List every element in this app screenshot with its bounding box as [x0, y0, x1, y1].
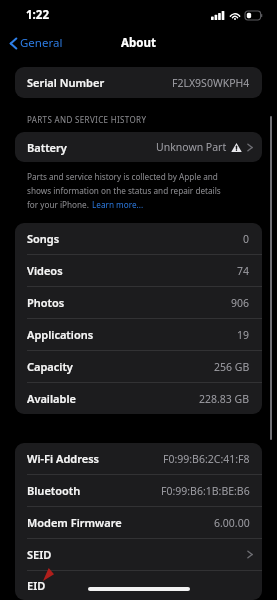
- staticText: Modem Firmware: [27, 515, 122, 530]
- button[interactable]: Photos: [15, 287, 262, 319]
- staticText: F2LX9S0WKPH4: [172, 76, 250, 90]
- other: Warning: [231, 142, 242, 153]
- staticText: for your iPhone.: [27, 199, 92, 210]
- staticText: SEID: [27, 547, 52, 562]
- other: Open details: [247, 549, 253, 560]
- button[interactable]: General: [0, 32, 71, 54]
- staticText: General: [20, 35, 63, 51]
- staticText: Bluetooth: [27, 483, 81, 498]
- staticText: Available: [27, 391, 76, 406]
- button[interactable]: Learn more...: [92, 199, 144, 210]
- button[interactable]: Bluetooth: [15, 475, 262, 507]
- button[interactable]: Videos: [15, 255, 262, 287]
- staticText: EID: [27, 578, 46, 593]
- staticText: Applications: [27, 327, 94, 342]
- staticText: 1:22: [26, 7, 49, 23]
- button[interactable]: EID: [15, 571, 262, 600]
- staticText: 74: [237, 264, 250, 278]
- button[interactable]: Modem Firmware: [15, 507, 262, 539]
- staticText: Capacity: [27, 359, 73, 374]
- button[interactable]: Serial Number: [15, 67, 262, 98]
- staticText: About: [121, 35, 156, 51]
- staticText: Wi-Fi Address: [27, 451, 100, 466]
- staticText: Songs: [27, 231, 60, 246]
- staticText: 6.00.00: [214, 516, 250, 530]
- staticText: 228.83 GB: [199, 392, 250, 406]
- staticText: 256 GB: [214, 360, 250, 374]
- staticText: PARTS AND SERVICE HISTORY: [27, 114, 147, 125]
- staticText: F0:99:B6:2C:41:F8: [163, 452, 250, 466]
- staticText: Unknown Part: [156, 140, 227, 154]
- staticText: Battery: [27, 140, 67, 155]
- other: Open details: [247, 142, 253, 153]
- button[interactable]: Applications: [15, 319, 262, 351]
- button[interactable]: SEID: [15, 539, 262, 571]
- staticText: Serial Number: [27, 75, 105, 90]
- staticText: 906: [231, 296, 250, 310]
- button[interactable]: Capacity: [15, 351, 262, 383]
- button[interactable]: Songs: [15, 223, 262, 255]
- staticText: Learn more...: [92, 199, 144, 210]
- staticText: Parts and service history is collected b…: [27, 171, 218, 182]
- button[interactable]: Battery: [15, 132, 262, 162]
- staticText: 19: [237, 328, 250, 342]
- button[interactable]: Wi-Fi Address: [15, 443, 262, 475]
- staticText: F0:99:B6:1B:BE:B6: [161, 484, 250, 498]
- staticText: 0: [243, 232, 250, 246]
- staticText: Videos: [27, 263, 63, 278]
- button[interactable]: Available: [15, 383, 262, 414]
- staticText: Photos: [27, 295, 65, 310]
- staticText: shows information on the status and repa…: [27, 185, 221, 196]
